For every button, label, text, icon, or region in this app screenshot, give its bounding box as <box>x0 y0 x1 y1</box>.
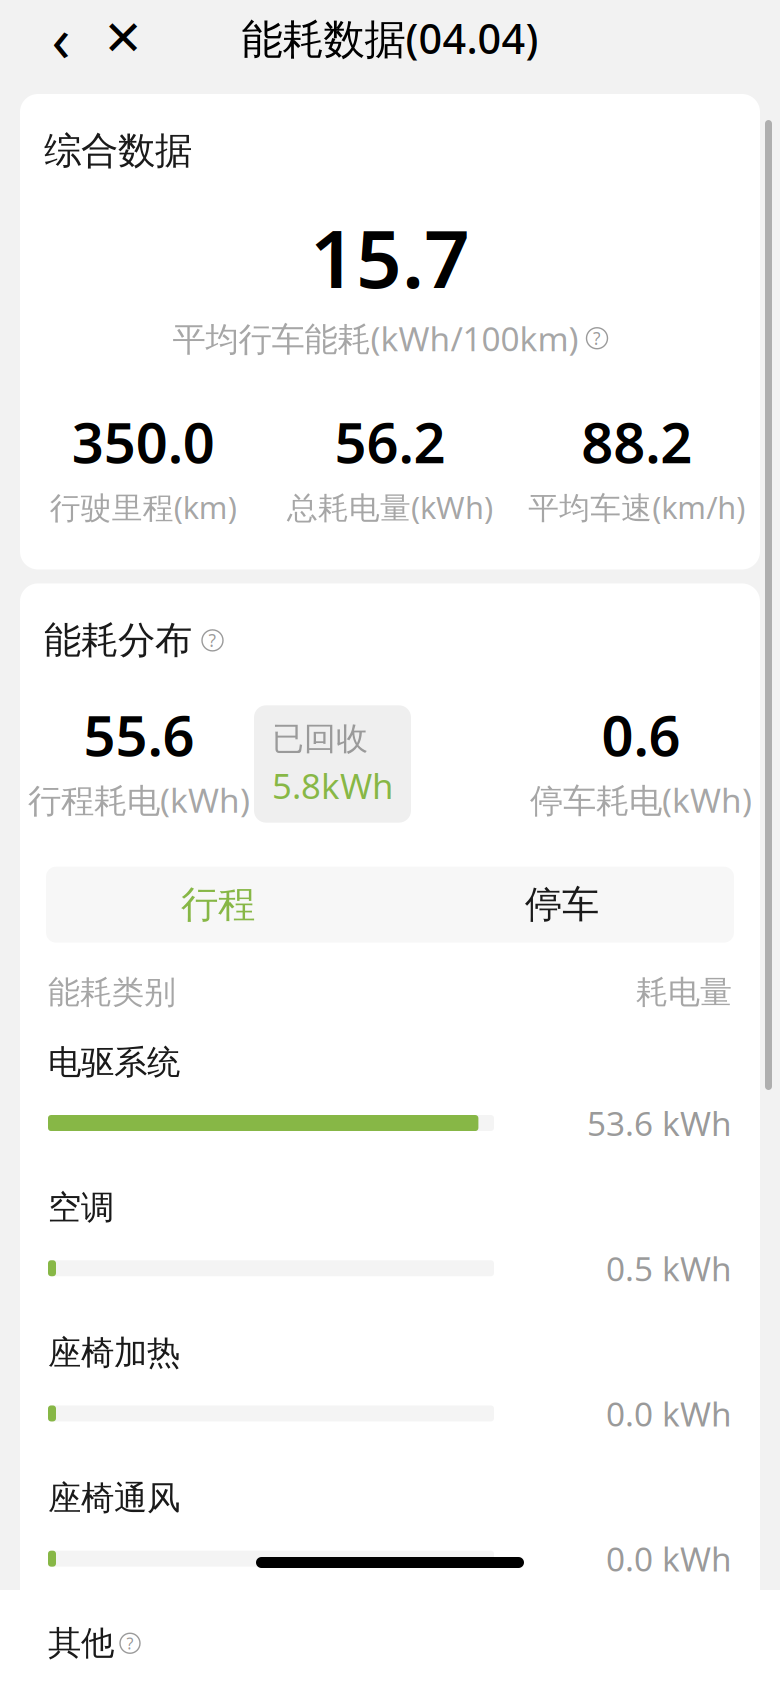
button[interactable]: Back <box>30 7 92 69</box>
staticText: 88.2 <box>581 404 692 479</box>
staticText: 0.0 kWh <box>606 1536 732 1581</box>
staticText: 停车耗电(kWh) <box>530 778 752 822</box>
staticText: 56.2 <box>334 404 445 479</box>
staticText: 53.6 kWh <box>587 1101 732 1145</box>
staticText: 座椅通风 <box>48 1478 180 1518</box>
staticText: 能耗类别 <box>48 973 176 1012</box>
staticText: 行程耗电(kWh) <box>28 778 250 822</box>
staticText: 350.0 <box>72 404 215 479</box>
staticText: 停车 <box>525 882 599 928</box>
staticText: 已回收 <box>272 719 368 759</box>
staticText: 平均行车能耗(kWh/100km) <box>172 316 578 360</box>
staticText: 0.5 kWh <box>606 1246 732 1290</box>
staticText: 座椅加热 <box>48 1332 180 1373</box>
staticText: ‹ <box>51 0 70 79</box>
staticText: 15.7 <box>310 204 470 310</box>
staticText: 行驶里程(km) <box>50 487 237 527</box>
button[interactable]: Close <box>92 7 154 69</box>
staticText: 55.6 <box>83 697 194 772</box>
staticText: 能耗数据(04.04) <box>241 11 538 65</box>
staticText: 耗电量 <box>636 973 732 1012</box>
staticText: 0.0 kWh <box>606 1391 732 1436</box>
staticText: ? <box>126 1633 133 1654</box>
staticText: ✕ <box>103 11 143 65</box>
staticText: 能耗分布 <box>44 617 192 663</box>
staticText: 空调 <box>48 1187 114 1228</box>
staticText: 0.6 <box>601 697 680 772</box>
staticText: 平均车速(km/h) <box>528 487 745 527</box>
staticText: 5.8kWh <box>272 763 393 809</box>
staticText: ? <box>593 327 601 350</box>
staticText: 电驱系统 <box>48 1042 180 1083</box>
staticText: ? <box>208 629 216 652</box>
staticText: 行程 <box>181 882 255 928</box>
staticText: 总耗电量(kWh) <box>287 487 493 527</box>
button[interactable]: 停车 <box>390 867 734 943</box>
staticText: 综合数据 <box>44 128 192 174</box>
button[interactable]: 行程 <box>46 867 390 943</box>
staticText: 其他 <box>48 1623 114 1664</box>
